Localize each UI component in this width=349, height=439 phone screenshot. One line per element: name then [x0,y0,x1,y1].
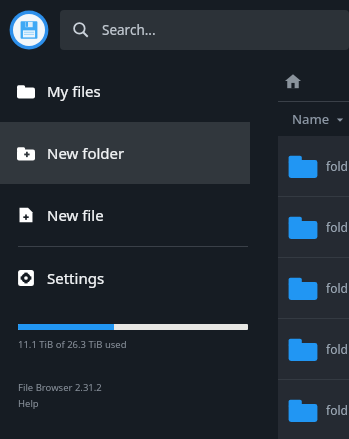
staticText: folder [326,219,349,235]
button[interactable]: File Browser logo [7,8,51,52]
staticText: Search... [102,21,156,39]
button[interactable]: Search... [60,10,349,50]
staticText: folder [326,402,349,418]
button[interactable]: My files [0,60,250,122]
button[interactable]: folder [278,136,349,196]
button[interactable]: Name [278,102,349,136]
button[interactable]: folder [278,197,349,257]
staticText: File Browser 2.31.2 [18,381,102,394]
button[interactable]: Settings [0,247,250,309]
staticText: Settings [47,268,105,288]
button[interactable]: folder [278,258,349,318]
staticText: folder [326,280,349,296]
staticText: Name [292,110,330,128]
staticText: folder [326,341,349,357]
staticText: folder [326,158,349,174]
button[interactable]: New folder [0,122,250,184]
button[interactable]: folder [278,380,349,439]
staticText: New file [47,205,104,225]
button[interactable]: folder [278,319,349,379]
staticText: 11.1 TiB of 26.3 TiB used [18,338,127,351]
staticText: New folder [47,143,125,163]
staticText: My files [47,81,101,101]
button[interactable]: New file [0,184,250,246]
button[interactable]: Home [282,70,304,92]
button[interactable]: Help [18,397,39,410]
